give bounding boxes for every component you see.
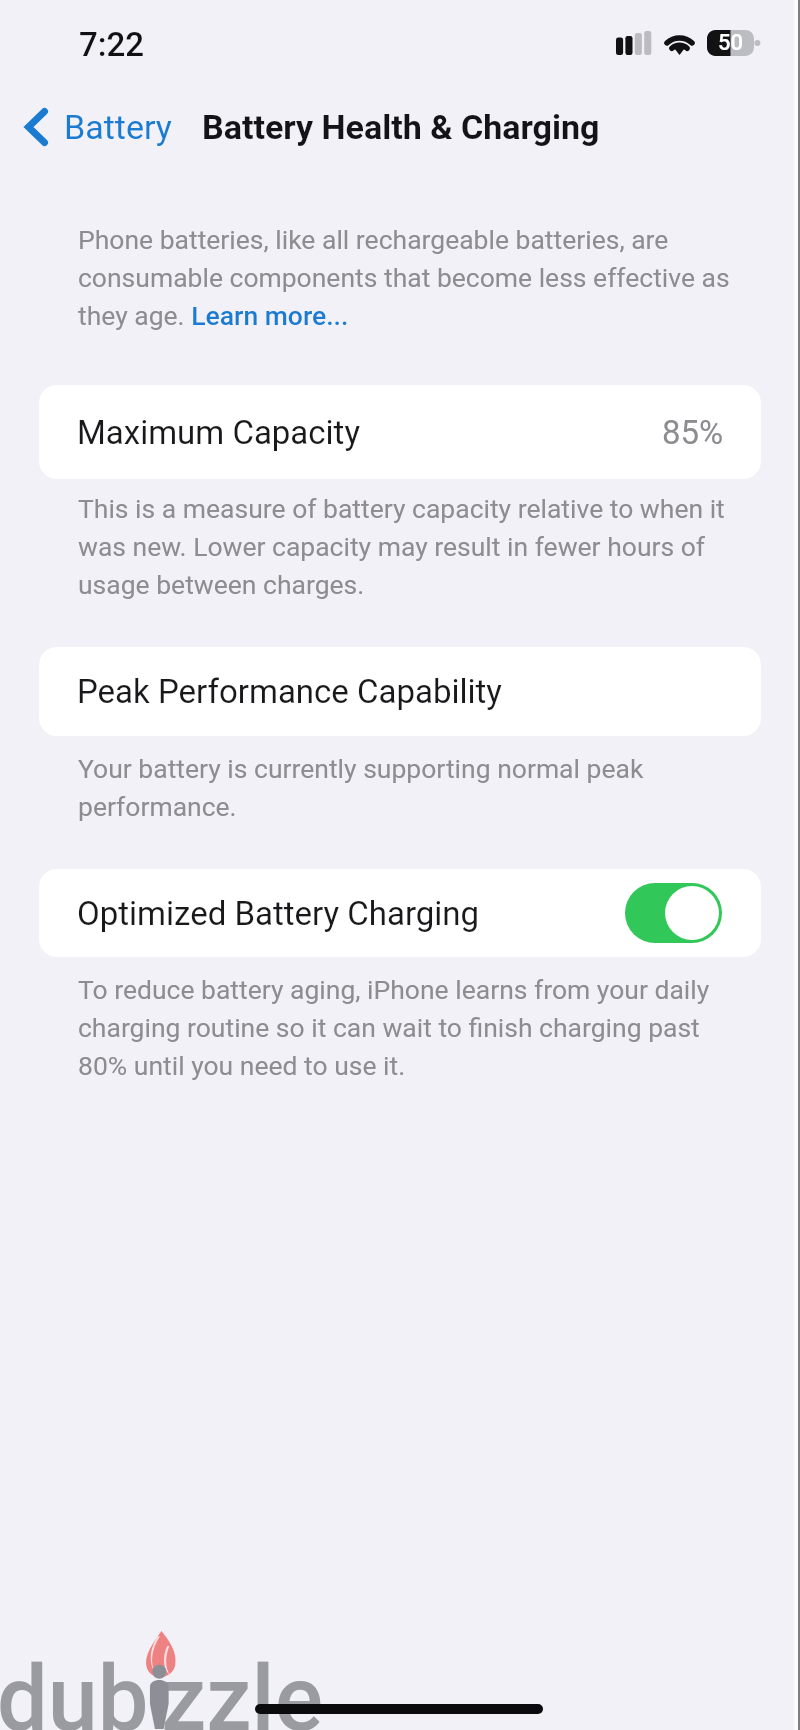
staticText: 50 (718, 30, 744, 56)
staticText: 85% (662, 413, 724, 452)
button[interactable]: Maximum Capacity (39, 385, 761, 479)
staticText: Battery (64, 107, 172, 147)
staticText: This is a measure of battery capacity re… (78, 493, 728, 601)
staticText: Battery Health & Charging (202, 107, 600, 147)
staticText: dub (0, 1647, 149, 1730)
staticText: Phone batteries, like all rechargeable b… (78, 224, 738, 332)
staticText: 7:22 (79, 25, 145, 64)
staticText: Maximum Capacity (77, 413, 361, 452)
staticText: Optimized Battery Charging (77, 894, 480, 933)
button[interactable]: Back to Battery (0, 107, 178, 147)
staticText: To reduce battery aging, iPhone learns f… (78, 974, 728, 1082)
button[interactable]: Optimized Battery Charging toggle, on (625, 883, 722, 943)
button[interactable]: Optimized Battery Charging (39, 869, 761, 957)
button[interactable]: Peak Performance Capability (39, 647, 761, 736)
staticText: Your battery is currently supporting nor… (78, 753, 698, 823)
other: Back to Battery (25, 108, 48, 146)
staticText: zzle (161, 1647, 323, 1730)
staticText: Peak Performance Capability (77, 672, 502, 711)
